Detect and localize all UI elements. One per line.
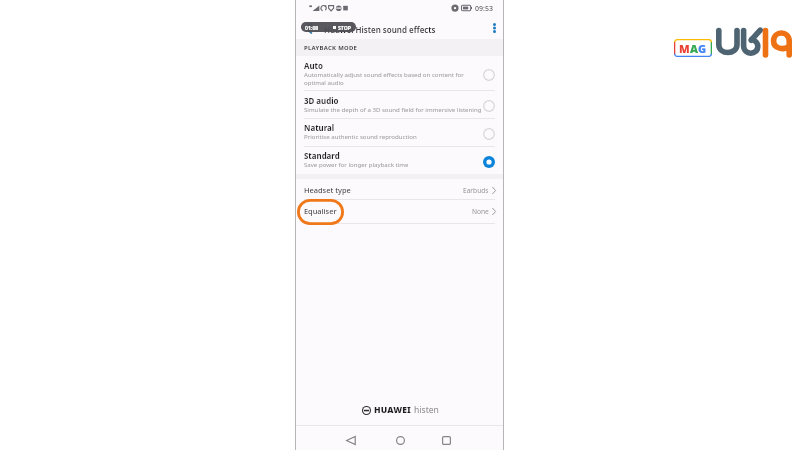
staticText: STOP: [338, 24, 352, 31]
button[interactable]: Back: [339, 428, 363, 450]
button[interactable]: Natural: [296, 119, 503, 146]
button[interactable]: Equaliser: [296, 200, 503, 223]
staticText: 01:08: [305, 24, 319, 31]
staticText: Simulate the depth of a 3D sound field f…: [304, 105, 482, 113]
staticText: Prioritise authentic sound reproduction: [304, 132, 417, 140]
staticText: 3D audio: [304, 96, 339, 107]
staticText: M: [679, 41, 690, 56]
staticText: optimal audio: [304, 78, 344, 86]
staticText: Earbuds: [463, 186, 489, 195]
button[interactable]: 01:08: [301, 22, 356, 32]
button[interactable]: Headset type: [296, 179, 503, 202]
staticText: PLAYBACK MODE: [304, 44, 358, 52]
button[interactable]: Home: [388, 428, 412, 450]
button[interactable]: Recent apps: [434, 428, 458, 450]
staticText: None: [472, 207, 489, 216]
staticText: Automatically adjust sound effects based…: [304, 70, 464, 78]
button[interactable]: More options: [485, 16, 503, 40]
staticText: G: [698, 41, 707, 56]
staticText: Equaliser: [304, 206, 337, 216]
staticText: Natural: [304, 123, 335, 134]
staticText: A: [690, 41, 698, 56]
staticText: Auto: [304, 61, 323, 72]
staticText: Headset type: [304, 185, 351, 195]
staticText: histen: [414, 404, 439, 416]
staticText: Huawei Histen sound effects: [324, 24, 436, 35]
staticText: Standard: [304, 151, 340, 162]
button[interactable]: Standard: [296, 147, 503, 174]
staticText: HUAWEI: [374, 404, 411, 416]
button[interactable]: Back: [298, 16, 320, 40]
staticText: 09:53: [475, 4, 493, 14]
staticText: Save power for longer playback time: [304, 160, 409, 168]
button[interactable]: 3D audio: [296, 91, 503, 118]
button[interactable]: Auto: [296, 58, 503, 90]
